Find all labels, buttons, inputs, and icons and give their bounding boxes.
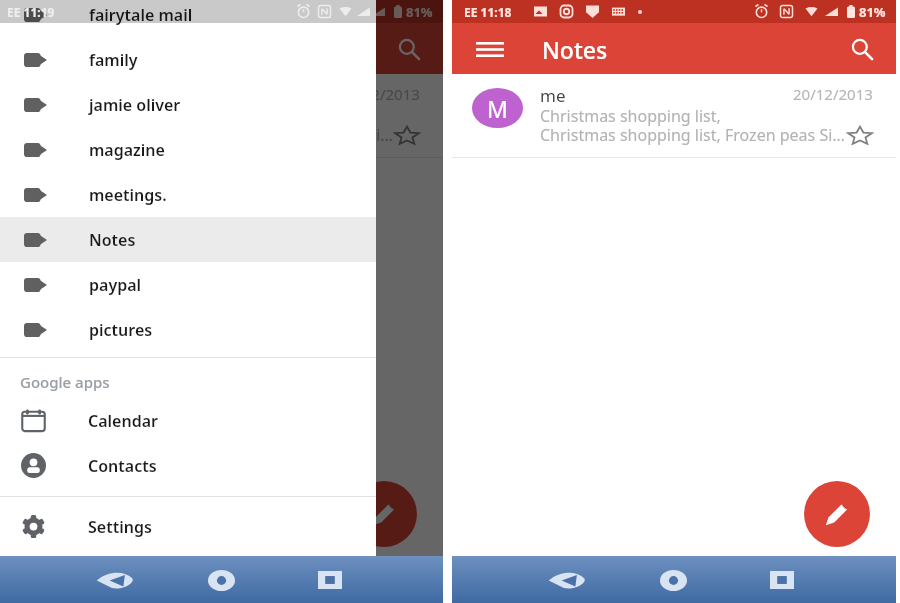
staticText: 81%: [859, 3, 886, 21]
staticText: M: [35, 93, 56, 124]
staticText: 81%: [406, 3, 433, 21]
staticText: EE 11:18: [12, 4, 60, 20]
button[interactable]: Compose: [351, 481, 417, 547]
button[interactable]: Home: [199, 558, 243, 602]
staticText: Calendar: [88, 410, 158, 432]
button[interactable]: Settings: [0, 505, 376, 548]
button[interactable]: Home: [651, 558, 695, 602]
staticText: Christmas shopping list, Frozen peas Si…: [540, 124, 845, 146]
staticText: me: [540, 84, 566, 107]
staticText: Notes: [90, 34, 156, 65]
button[interactable]: Open navigation drawer: [467, 30, 512, 68]
button[interactable]: paypal: [0, 262, 376, 307]
staticText: family: [89, 49, 138, 71]
staticText: fairytale mail: [89, 4, 193, 26]
button[interactable]: Calendar: [0, 398, 376, 443]
staticText: pictures: [89, 319, 153, 341]
button[interactable]: jamie oliver: [0, 82, 376, 127]
button[interactable]: family: [0, 37, 376, 82]
staticText: Settings: [88, 516, 152, 538]
staticText: EE 11:19: [7, 4, 55, 20]
staticText: Google apps: [20, 372, 110, 392]
staticText: Notes: [89, 229, 136, 251]
staticText: EE 11:18: [464, 4, 512, 20]
button[interactable]: Search: [389, 29, 429, 69]
staticText: meetings.: [89, 184, 167, 206]
button[interactable]: pictures: [0, 307, 376, 352]
button[interactable]: magazine: [0, 127, 376, 172]
staticText: 20/12/2013: [340, 84, 420, 104]
button[interactable]: Back: [93, 558, 137, 602]
button[interactable]: Search: [842, 29, 882, 69]
button[interactable]: M: [0, 74, 443, 157]
staticText: magazine: [89, 139, 165, 161]
button[interactable]: Compose: [804, 481, 870, 547]
button[interactable]: Star: [388, 116, 426, 154]
staticText: Contacts: [88, 455, 157, 477]
button[interactable]: Recent apps: [308, 558, 352, 602]
staticText: Christmas shopping list,: [540, 105, 721, 127]
staticText: jamie oliver: [89, 94, 181, 116]
button[interactable]: Star: [841, 116, 879, 154]
button[interactable]: M: [452, 74, 896, 157]
button[interactable]: meetings.: [0, 172, 376, 217]
button[interactable]: Back: [545, 558, 589, 602]
button[interactable]: Open navigation drawer: [15, 30, 60, 68]
staticText: Christmas shopping list,: [88, 105, 269, 127]
staticText: paypal: [89, 274, 142, 296]
button[interactable]: Notes: [0, 217, 376, 262]
staticText: Christmas shopping list, Frozen peas Si…: [88, 124, 393, 146]
button[interactable]: Contacts: [0, 443, 376, 488]
button[interactable]: Recent apps: [760, 558, 804, 602]
staticText: me: [88, 84, 114, 107]
staticText: Notes: [542, 34, 608, 65]
button[interactable]: fairytale mail: [0, 0, 376, 37]
staticText: M: [487, 93, 508, 124]
staticText: 20/12/2013: [793, 84, 873, 104]
